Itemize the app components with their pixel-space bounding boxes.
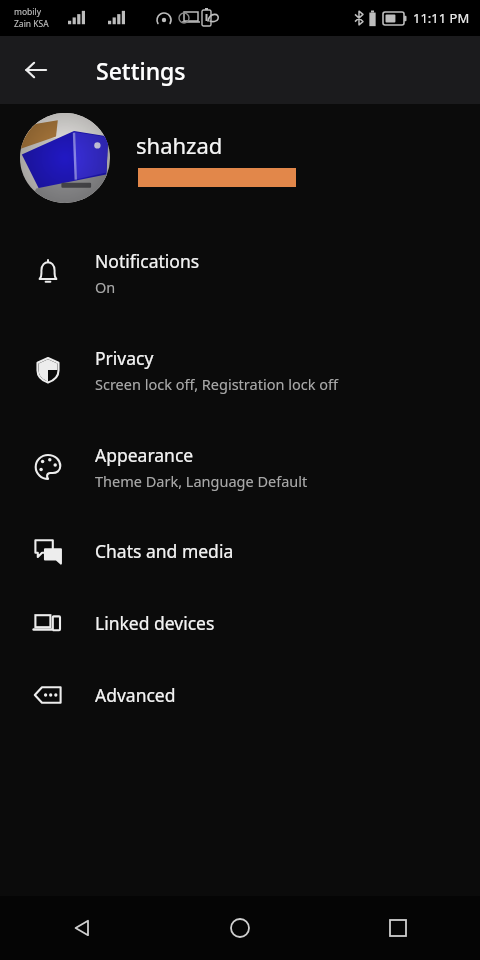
staticText: On bbox=[95, 277, 116, 297]
button[interactable]: Privacy bbox=[0, 321, 480, 418]
staticText: Notifications bbox=[95, 249, 200, 273]
button[interactable]: Recent apps bbox=[374, 904, 422, 952]
staticText: Linked devices bbox=[95, 611, 215, 635]
button[interactable]: shahzad bbox=[0, 104, 480, 212]
staticText: Zain KSA bbox=[14, 18, 49, 30]
staticText: Settings bbox=[96, 55, 186, 86]
staticText: Privacy bbox=[95, 346, 154, 370]
button[interactable]: Appearance bbox=[0, 418, 480, 515]
button[interactable]: Linked devices bbox=[0, 587, 480, 659]
button[interactable]: Back bbox=[10, 44, 62, 96]
button[interactable]: Notifications bbox=[0, 224, 480, 321]
button[interactable]: Back bbox=[58, 904, 106, 952]
staticText: shahzad bbox=[136, 130, 223, 160]
staticText: Chats and media bbox=[95, 539, 234, 563]
staticText: 11:11 PM bbox=[413, 9, 470, 27]
staticText: Theme Dark, Language Default bbox=[95, 471, 308, 491]
button[interactable]: Home bbox=[216, 904, 264, 952]
staticText: Appearance bbox=[95, 443, 194, 467]
button[interactable]: Advanced bbox=[0, 659, 480, 731]
staticText: Screen lock off, Registration lock off bbox=[95, 374, 338, 394]
staticText: mobily bbox=[14, 6, 42, 18]
staticText: Advanced bbox=[95, 683, 176, 707]
button[interactable]: Chats and media bbox=[0, 515, 480, 587]
